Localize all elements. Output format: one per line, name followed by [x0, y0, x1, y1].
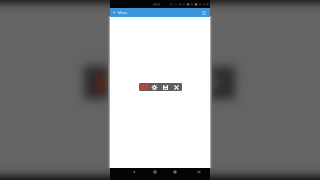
button[interactable]: Save — [162, 84, 168, 90]
button[interactable]: Close — [173, 84, 179, 90]
button[interactable]: Screenshot — [195, 168, 203, 175]
button[interactable]: Record — [140, 84, 149, 90]
button[interactable]: More options — [201, 10, 207, 16]
button[interactable]: Back — [112, 10, 117, 15]
staticText: Menu — [118, 10, 128, 15]
button[interactable]: Recents — [171, 168, 179, 175]
button[interactable]: Settings — [151, 84, 157, 90]
button[interactable]: Home — [151, 168, 159, 175]
button[interactable]: Back — [130, 168, 138, 175]
